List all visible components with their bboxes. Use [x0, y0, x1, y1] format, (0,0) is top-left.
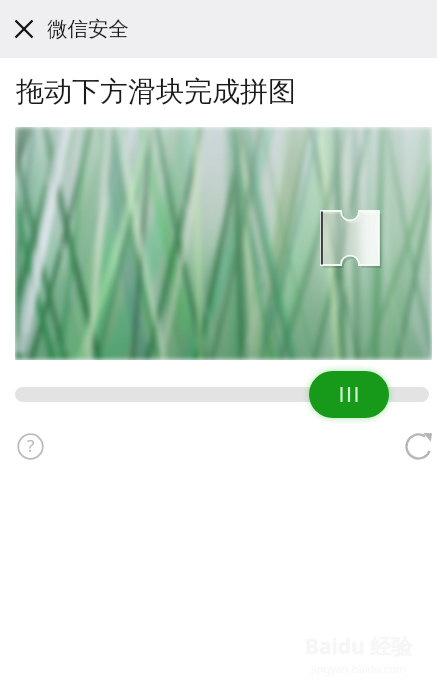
button[interactable]: Help: [17, 433, 44, 460]
button[interactable]: Close: [8, 13, 40, 45]
button[interactable]: Drag slider: [309, 371, 389, 418]
staticText: Baidu 经验: [305, 632, 413, 661]
staticText: ?: [27, 434, 35, 457]
staticText: 拖动下方滑块完成拼图: [16, 74, 296, 109]
button[interactable]: Refresh: [403, 431, 434, 462]
staticText: 微信安全: [47, 16, 129, 42]
